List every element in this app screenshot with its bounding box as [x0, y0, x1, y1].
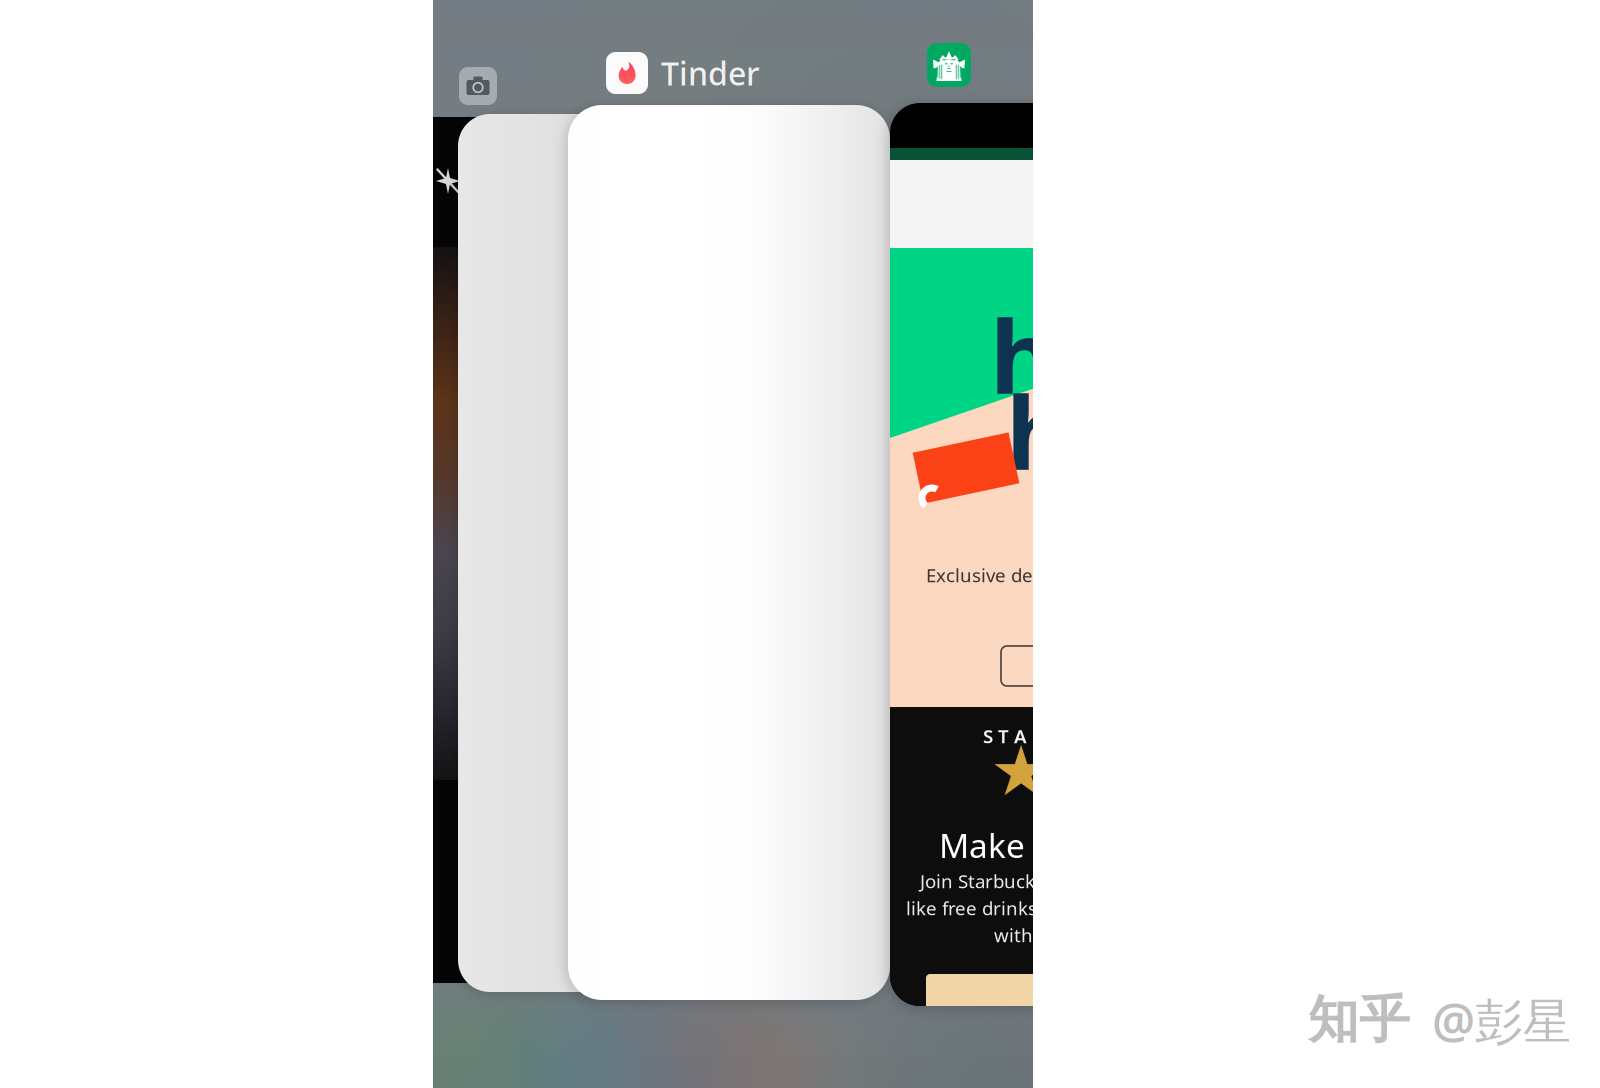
staticText: Join Starbucks R: [920, 869, 1061, 893]
staticText: like free drinks an: [906, 896, 1064, 920]
button[interactable]: Starbucks app card: [890, 103, 1070, 1006]
staticText: Tinder: [661, 52, 760, 94]
staticText: h: [1006, 364, 1072, 498]
button[interactable]: App card: [458, 114, 689, 992]
staticText: Exclusive deals: [926, 563, 1062, 587]
staticText: ★: [990, 732, 1052, 810]
button[interactable]: Camera: [459, 67, 497, 105]
staticText: Make eve: [939, 823, 1088, 867]
staticText: h: [990, 288, 1056, 422]
button[interactable]: Tinder app card: [568, 105, 890, 1000]
button[interactable]: Starbucks: [927, 43, 971, 87]
button[interactable]: Camera app card: [395, 117, 523, 983]
button[interactable]: Tinder: [606, 51, 746, 95]
staticText: @彭星: [1432, 988, 1571, 1052]
staticText: 知乎: [1308, 989, 1410, 1051]
staticText: S T A R: [983, 724, 1044, 748]
staticText: with: [994, 923, 1033, 947]
